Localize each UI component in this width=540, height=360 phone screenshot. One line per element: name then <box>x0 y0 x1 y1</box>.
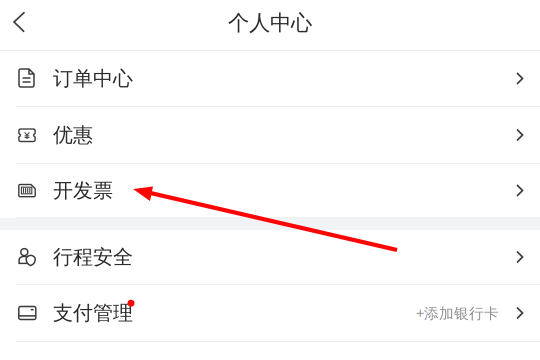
staticText: 个人中心 <box>228 10 312 36</box>
button[interactable]: 优惠 <box>0 107 540 164</box>
staticText: 行程安全 <box>53 245 133 269</box>
staticText: 支付管理 <box>53 301 133 325</box>
button[interactable]: 订单中心 <box>0 51 540 107</box>
button[interactable]: 开发票 <box>0 164 540 218</box>
button[interactable]: 支付管理 <box>0 285 540 342</box>
staticText: 开发票 <box>53 178 113 203</box>
staticText: 优惠 <box>53 123 93 147</box>
button[interactable]: 行程安全 <box>0 230 540 285</box>
button[interactable]: Back <box>0 0 39 50</box>
staticText: 订单中心 <box>53 66 133 91</box>
staticText: +添加银行卡 <box>416 303 499 323</box>
